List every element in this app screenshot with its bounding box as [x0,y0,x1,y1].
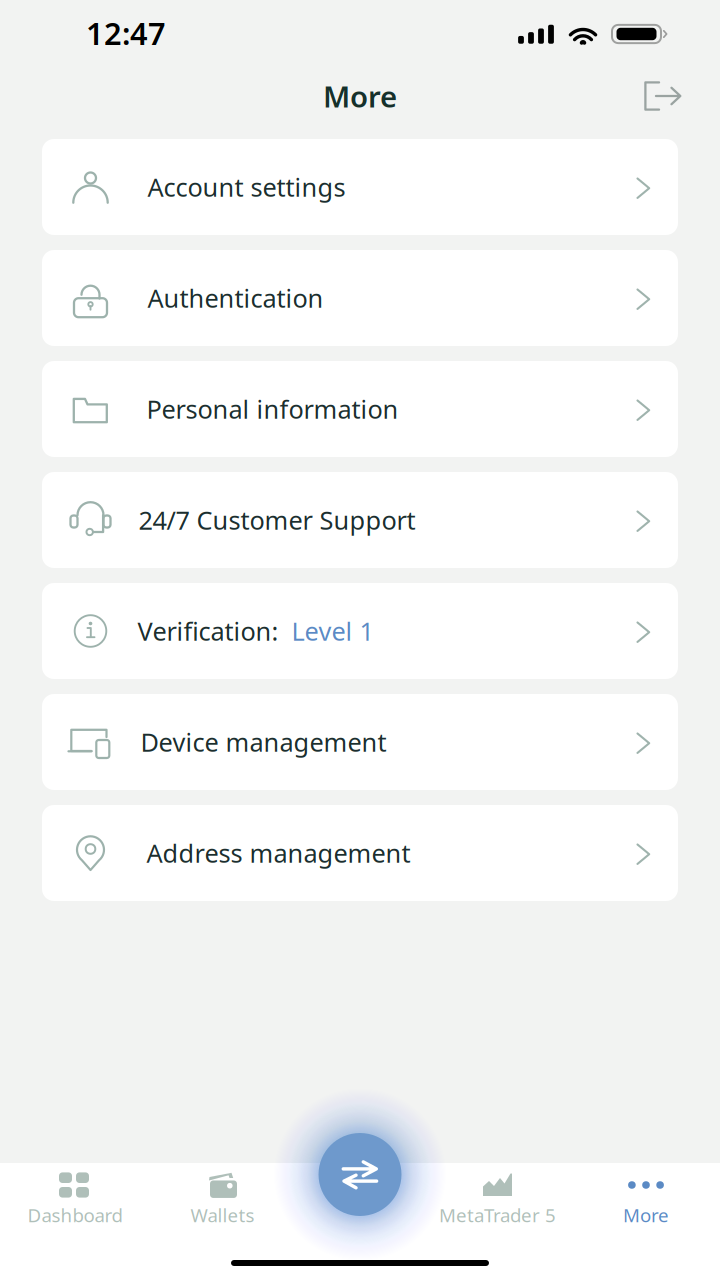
staticText: Address management [146,836,410,870]
staticText: MetaTrader 5 [439,1203,556,1227]
staticText: Personal information [146,392,398,426]
staticText: More [323,76,397,115]
button[interactable]: Log out [635,70,691,122]
button[interactable]: Wallets [144,1163,288,1280]
staticText: More [623,1203,669,1227]
staticText: 24/7 Customer Support [138,503,415,537]
button[interactable]: Transfer [272,1086,448,1262]
staticText: Authentication [147,281,323,315]
staticText: Level 1 [291,614,373,648]
button[interactable]: Dashboard [0,1163,144,1280]
button[interactable]: Device management [42,694,678,790]
button[interactable]: Personal information [42,361,678,457]
staticText: Device management [140,725,386,759]
button[interactable]: More [576,1163,720,1280]
staticText: Dashboard [27,1203,122,1227]
staticText: Verification: [137,614,278,648]
button[interactable]: Verification: [42,583,678,679]
button[interactable]: 24/7 Customer Support [42,472,678,568]
button[interactable]: Account settings [42,139,678,235]
button[interactable]: Address management [42,805,678,901]
button[interactable]: MetaTrader 5 [432,1163,576,1280]
staticText: Wallets [190,1203,254,1227]
button[interactable]: Authentication [42,250,678,346]
staticText: 12:47 [86,13,166,53]
staticText: Account settings [147,170,345,204]
